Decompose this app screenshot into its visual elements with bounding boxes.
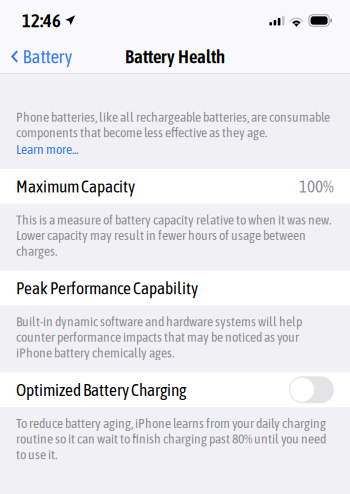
button[interactable]: Learn more... bbox=[16, 141, 78, 157]
button[interactable]: Battery bbox=[0, 41, 80, 71]
staticText: Battery Health bbox=[125, 46, 225, 67]
staticText: Maximum Capacity bbox=[16, 176, 135, 196]
staticText: To reduce battery aging, iPhone learns f… bbox=[16, 415, 326, 462]
staticText: Optimized Battery Charging bbox=[16, 380, 186, 400]
staticText: Peak Performance Capability bbox=[16, 278, 198, 298]
staticText: 100% bbox=[299, 176, 334, 196]
staticText: Learn more... bbox=[16, 141, 78, 157]
staticText: This is a measure of battery capacity re… bbox=[16, 212, 331, 259]
button[interactable]: Peak Performance Capability bbox=[0, 270, 350, 305]
button[interactable]: Optimized Battery Charging bbox=[289, 376, 334, 403]
staticText: Phone batteries, like all rechargeable b… bbox=[16, 109, 330, 140]
staticText: Built-in dynamic software and hardware s… bbox=[16, 313, 302, 360]
staticText: Battery bbox=[22, 46, 72, 67]
staticText: 12:46 bbox=[22, 10, 61, 31]
